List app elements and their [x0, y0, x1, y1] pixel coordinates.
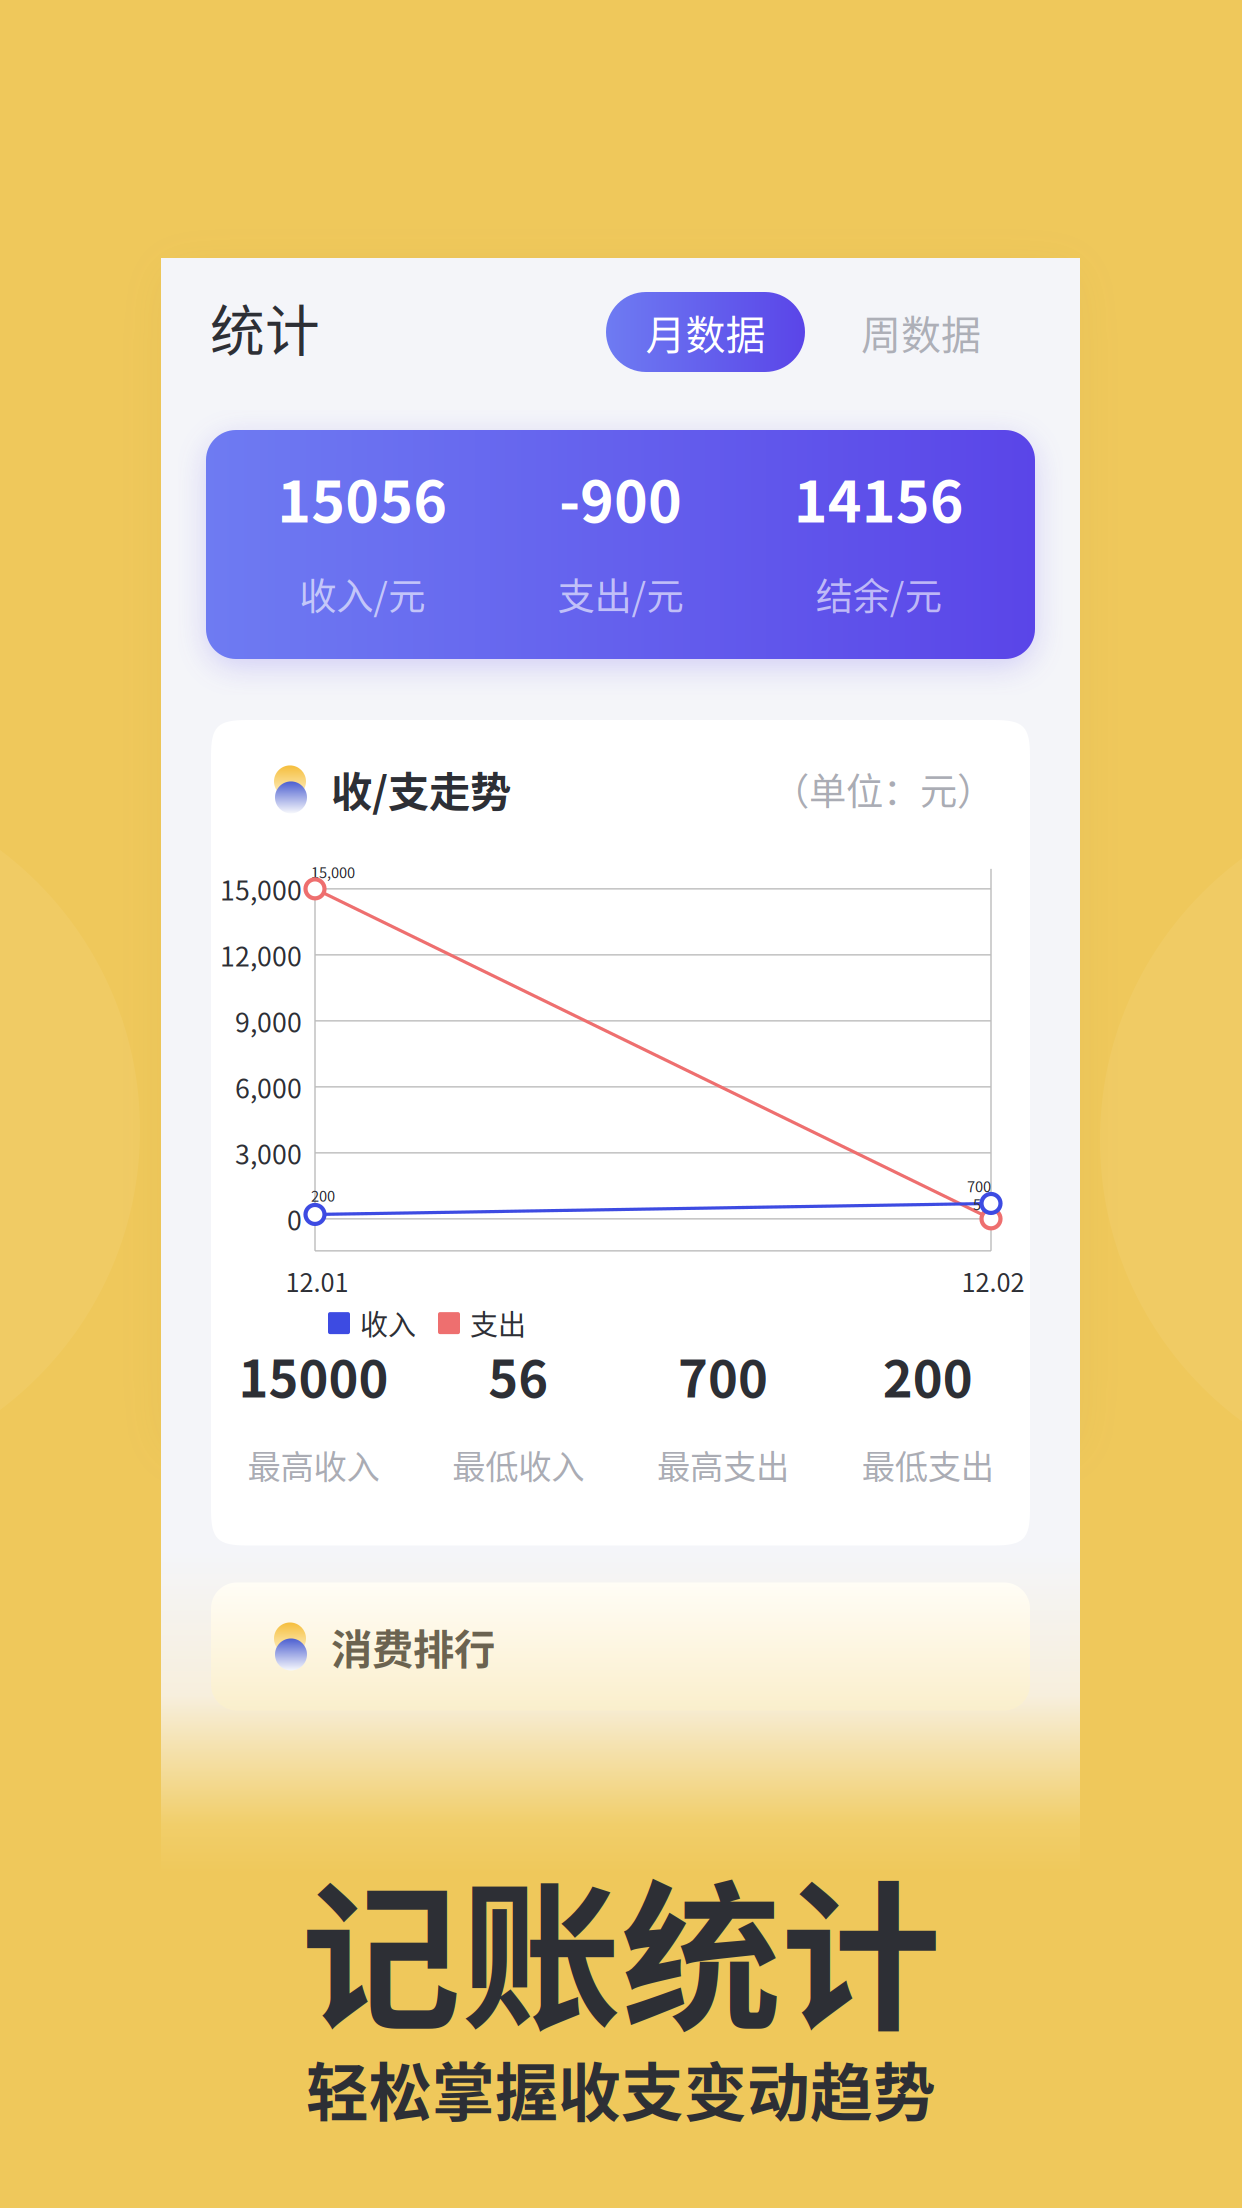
staticText: 9,000: [235, 1001, 302, 1040]
staticText: 记账统计: [301, 1831, 941, 2063]
button[interactable]: 周数据: [821, 292, 1021, 372]
staticText: 6,000: [235, 1067, 302, 1106]
staticText: 14156: [794, 456, 964, 539]
staticText: 支出: [470, 1303, 526, 1343]
staticText: （单位：元）: [772, 762, 994, 816]
staticText: 最低支出: [862, 1440, 994, 1488]
staticText: 收入: [360, 1303, 416, 1343]
staticText: 700: [678, 1339, 768, 1412]
staticText: 0: [287, 1199, 302, 1238]
staticText: 支出/元: [557, 567, 683, 621]
staticText: 周数据: [861, 303, 981, 361]
staticText: 12.01: [285, 1262, 348, 1299]
staticText: 统计: [210, 287, 320, 367]
staticText: 200: [311, 1185, 335, 1206]
staticText: 15000: [238, 1339, 388, 1412]
staticText: -900: [559, 456, 682, 539]
button[interactable]: 月数据: [606, 292, 805, 372]
staticText: 轻松掌握收支变动趋势: [306, 2043, 936, 2133]
button[interactable]: 消费排行: [211, 1545, 1030, 1710]
staticText: 56: [488, 1339, 548, 1412]
staticText: 12,000: [220, 935, 302, 974]
staticText: 最高收入: [247, 1440, 379, 1488]
staticText: 15,000: [311, 861, 355, 882]
staticText: 月数据: [645, 303, 765, 361]
staticText: 消费排行: [331, 1617, 495, 1676]
staticText: 收/支走势: [331, 759, 511, 819]
staticText: 收入/元: [299, 567, 425, 621]
staticText: 56: [973, 1193, 989, 1214]
staticText: 最低收入: [452, 1440, 584, 1488]
staticText: 12.02: [961, 1262, 1024, 1299]
staticText: 15056: [277, 456, 447, 539]
staticText: 3,000: [235, 1133, 302, 1172]
staticText: 700: [967, 1175, 991, 1196]
staticText: 200: [883, 1339, 973, 1412]
staticText: 结余/元: [816, 567, 942, 621]
staticText: 15,000: [220, 869, 302, 908]
staticText: 最高支出: [657, 1440, 789, 1488]
